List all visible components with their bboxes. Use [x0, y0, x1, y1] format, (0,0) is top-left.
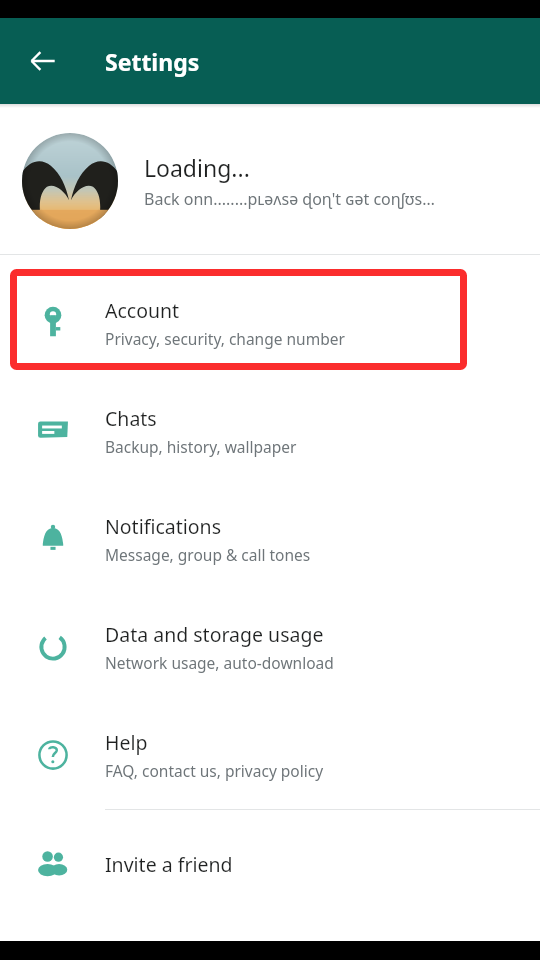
staticText: Notifications	[105, 513, 221, 540]
staticText: Loading...	[144, 152, 250, 183]
staticText: FAQ, contact us, privacy policy	[105, 760, 324, 781]
button[interactable]: Invite a friend	[0, 810, 540, 918]
staticText: Settings	[105, 46, 200, 77]
staticText: Message, group & call tones	[105, 544, 311, 565]
button[interactable]: Chats	[0, 377, 540, 485]
staticText: Invite a friend	[105, 851, 233, 878]
button[interactable]: Data and storage usage	[0, 593, 540, 701]
staticText: Privacy, security, change number	[105, 328, 345, 349]
staticText: Back onn........pʟǝʌsǝ ɖoɳ't ɢǝt coɳʃʊs…	[144, 188, 435, 210]
staticText: Help	[105, 729, 148, 756]
button[interactable]: Help	[0, 701, 540, 809]
button[interactable]: Loading...	[0, 108, 540, 254]
staticText: Data and storage usage	[105, 621, 324, 648]
staticText: Chats	[105, 405, 157, 432]
staticText: Backup, history, wallpaper	[105, 436, 297, 457]
staticText: Network usage, auto-download	[105, 652, 334, 673]
button[interactable]: Back	[19, 37, 67, 85]
button[interactable]: Account	[0, 269, 540, 377]
button[interactable]: Notifications	[0, 485, 540, 593]
staticText: Account	[105, 297, 180, 324]
